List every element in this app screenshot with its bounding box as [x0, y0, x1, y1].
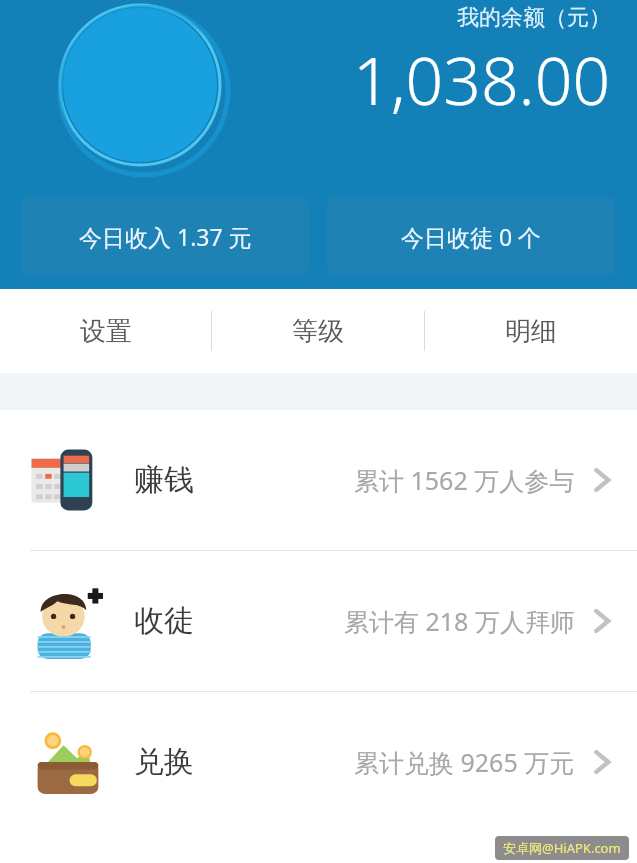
staticText: 安卓网@HiAPK.com — [503, 839, 621, 857]
staticText: 累计兑换 9265 万元 — [354, 745, 575, 779]
button[interactable]: 明细 — [425, 289, 637, 373]
button[interactable]: 今日收徒 0 个 — [327, 197, 615, 275]
staticText: 设置 — [80, 315, 132, 348]
staticText: 等级 — [292, 315, 344, 348]
other: Open 收徒 — [589, 608, 615, 634]
button[interactable]: 收徒 — [0, 551, 637, 691]
button[interactable]: 兑换 — [0, 692, 637, 832]
button[interactable]: 赚钱 — [0, 410, 637, 550]
button[interactable]: 今日收入 1.37 元 — [22, 197, 309, 275]
button[interactable]: 我的余额（元） — [22, 4, 615, 176]
staticText: 今日收入 1.37 元 — [79, 221, 252, 252]
staticText: 赚钱 — [134, 461, 194, 499]
staticText: 我的余额（元） — [457, 4, 611, 32]
other: Open 赚钱 — [589, 467, 615, 493]
staticText: 收徒 — [134, 602, 194, 640]
other: Open 兑换 — [589, 749, 615, 775]
staticText: 今日收徒 0 个 — [401, 221, 542, 252]
staticText: 明细 — [505, 315, 557, 348]
staticText: 1,038.00 — [353, 34, 611, 124]
staticText: 累计 1562 万人参与 — [354, 463, 575, 497]
staticText: 兑换 — [134, 743, 194, 781]
button[interactable]: 等级 — [212, 289, 424, 373]
staticText: 累计有 218 万人拜师 — [344, 604, 575, 638]
button[interactable]: 设置 — [0, 289, 211, 373]
